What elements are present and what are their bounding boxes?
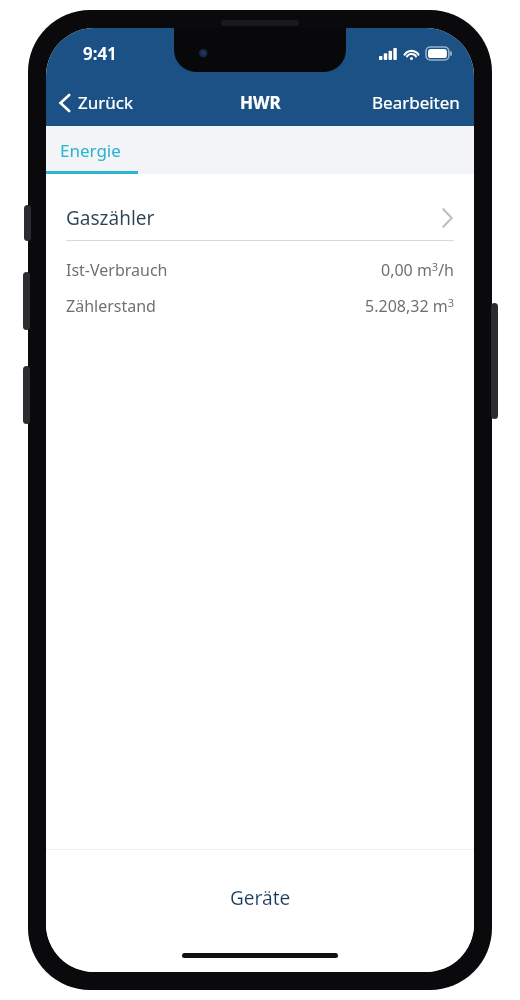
- staticText: HWR: [240, 91, 281, 114]
- button[interactable]: Gaszähler: [46, 196, 474, 240]
- staticText: Zählerstand: [66, 295, 156, 317]
- staticText: Zurück: [78, 91, 133, 114]
- staticText: 0,00 m3/h: [381, 259, 454, 281]
- staticText: Ist-Verbrauch: [66, 259, 168, 281]
- staticText: Bearbeiten: [372, 91, 460, 114]
- staticText: Geräte: [230, 885, 291, 911]
- button[interactable]: Geräte: [46, 850, 474, 946]
- staticText: Energie: [60, 139, 121, 162]
- button[interactable]: Zurück: [46, 85, 143, 120]
- button[interactable]: Energie: [46, 126, 135, 174]
- staticText: Gaszähler: [66, 205, 155, 231]
- button[interactable]: Bearbeiten: [358, 83, 474, 122]
- other: Details anzeigen: [441, 207, 454, 229]
- staticText: 9:41: [83, 42, 117, 65]
- staticText: 5.208,32 m3: [365, 295, 454, 317]
